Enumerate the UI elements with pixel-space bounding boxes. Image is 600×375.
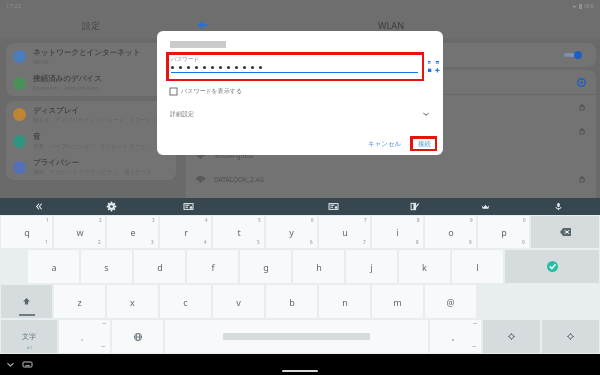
staticText: 4 <box>205 217 208 223</box>
button[interactable]: c <box>160 285 211 318</box>
button[interactable]: 。 <box>430 320 481 353</box>
button[interactable]: Switch keyboard <box>23 360 32 369</box>
button[interactable]: w <box>54 216 105 248</box>
button[interactable]: o <box>425 216 476 248</box>
staticText: 9 <box>469 239 472 245</box>
staticText: 8 <box>417 217 420 223</box>
button[interactable]: r <box>160 216 211 248</box>
staticText: 明るさ、アイプロテクション モード、スマート ローテーション <box>33 116 169 124</box>
button[interactable]: 接続済みのデバイス <box>6 70 176 96</box>
staticText: q <box>24 226 30 238</box>
button[interactable]: d <box>134 250 185 283</box>
staticText: c <box>183 296 188 308</box>
button[interactable]: Clipboard <box>179 198 197 215</box>
button[interactable]: m <box>372 285 423 318</box>
button[interactable]: Handwriting <box>405 198 423 215</box>
button[interactable]: @ <box>425 285 476 318</box>
button[interactable]: l <box>452 250 503 283</box>
staticText: 1 <box>45 239 48 245</box>
button[interactable]: z <box>54 285 105 318</box>
button[interactable]: Arrow <box>483 320 540 353</box>
button[interactable]: Voice input <box>549 198 567 215</box>
button[interactable]: e <box>107 216 158 248</box>
staticText: 0 <box>522 239 525 245</box>
button[interactable]: lenovo-guest <box>186 143 596 167</box>
button[interactable]: ディスプレイ <box>6 101 176 128</box>
staticText: 3 <box>152 217 155 223</box>
button[interactable] <box>186 95 596 119</box>
staticText: 6 <box>310 239 313 245</box>
staticText: o <box>448 226 454 238</box>
button[interactable]: n <box>319 285 370 318</box>
button[interactable]: プライバシー <box>6 154 176 180</box>
button[interactable]: Space <box>165 320 428 353</box>
button[interactable]: 音 <box>6 128 176 154</box>
staticText: プライバシー <box>33 158 79 167</box>
button[interactable]: g <box>240 250 291 283</box>
button[interactable]: t <box>213 216 264 248</box>
button[interactable]: s <box>81 250 132 283</box>
button[interactable]: Change language <box>112 320 163 353</box>
button[interactable]: p <box>478 216 529 248</box>
button[interactable]: f <box>187 250 238 283</box>
staticText: b <box>289 296 295 308</box>
button[interactable]: h <box>293 250 344 283</box>
button[interactable]: k <box>399 250 450 283</box>
button[interactable]: Hide keyboard <box>6 360 15 369</box>
button[interactable]: q <box>1 216 52 248</box>
staticText: r <box>184 226 188 238</box>
staticText: 音 <box>33 132 41 141</box>
staticText: 権限、アカウント アクティビティ、個人データ <box>33 168 152 176</box>
staticText: t <box>237 226 241 238</box>
staticText: 98% <box>584 3 594 10</box>
button[interactable]: b <box>266 285 317 318</box>
staticText: k <box>422 261 427 273</box>
button[interactable] <box>186 43 596 67</box>
button[interactable]: x <box>107 285 158 318</box>
button[interactable]: Shift <box>1 285 52 318</box>
button[interactable]: 詳細設定 <box>157 107 443 121</box>
button[interactable]: Themes <box>476 198 494 215</box>
button[interactable]: Enter <box>505 250 599 283</box>
button[interactable]: i <box>372 216 423 248</box>
button[interactable]: 接続 <box>413 139 435 149</box>
staticText: 8 <box>416 239 419 245</box>
staticText: j <box>370 261 373 273</box>
staticText: ー <box>472 344 477 350</box>
button[interactable]: y <box>266 216 317 248</box>
button[interactable]: 文字 <box>1 320 57 353</box>
staticText: ー <box>102 321 107 327</box>
button[interactable]: Scan QR code <box>426 59 441 74</box>
button[interactable]: j <box>346 250 397 283</box>
button[interactable]: u <box>319 216 370 248</box>
button[interactable]: パスワードを表示する <box>170 87 242 95</box>
button[interactable]: v <box>213 285 264 318</box>
staticText: s <box>104 261 109 273</box>
staticText: A I <box>27 345 32 350</box>
button[interactable]: Collapse <box>29 198 47 215</box>
button[interactable]: Backspace <box>531 216 599 248</box>
staticText: ネットワークとインターネット <box>33 48 141 57</box>
staticText: 、 <box>80 331 89 342</box>
button[interactable] <box>186 70 596 94</box>
button[interactable]: Stickers <box>324 198 342 215</box>
staticText: 文字 <box>22 332 36 341</box>
button[interactable]: キャンセル <box>363 138 407 150</box>
staticText: WLAN <box>33 58 49 65</box>
staticText: a <box>51 261 57 273</box>
button[interactable]: Back <box>196 18 210 32</box>
button[interactable] <box>186 119 596 143</box>
button[interactable]: ネットワークとインターネット <box>6 43 176 70</box>
button[interactable]: 、 <box>59 320 110 353</box>
staticText: x <box>130 296 135 308</box>
button[interactable]: DATALOOK_2.4G <box>186 167 596 191</box>
staticText: lenovo-guest <box>214 151 254 160</box>
staticText: @ <box>446 296 455 308</box>
button[interactable]: Settings <box>102 198 120 215</box>
staticText: ー <box>101 344 106 350</box>
staticText: f <box>211 261 215 273</box>
button[interactable]: a <box>28 250 79 283</box>
button[interactable]: Arrow <box>542 320 599 353</box>
staticText: パスワード <box>171 56 200 63</box>
